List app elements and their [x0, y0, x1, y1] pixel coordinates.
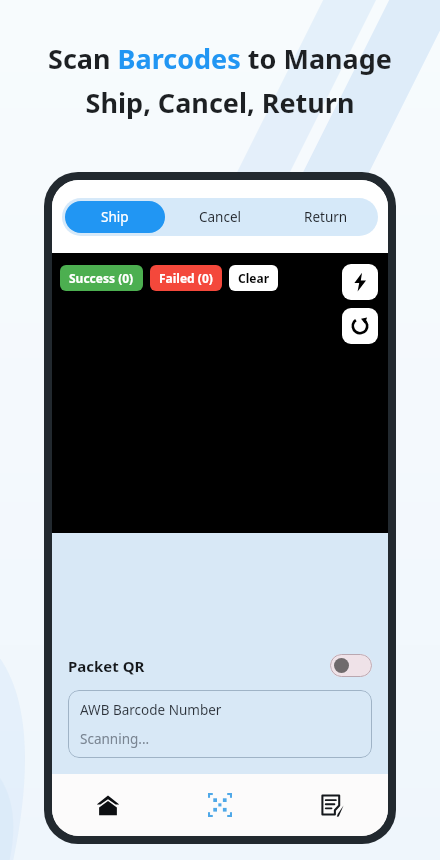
staticText: Failed (0): [159, 270, 213, 286]
button[interactable]: Return: [276, 201, 375, 233]
staticText: Scanning...: [80, 730, 150, 748]
button[interactable]: Failed (0): [150, 265, 222, 291]
staticText: Cancel: [199, 208, 242, 226]
staticText: Ship: [101, 208, 129, 226]
button[interactable]: Scan QR code: [164, 774, 276, 836]
button[interactable]: Refresh camera: [342, 308, 378, 344]
button[interactable]: Packet QR toggle: [330, 654, 372, 677]
button[interactable]: Ship: [65, 201, 165, 233]
button[interactable]: Notes: [276, 774, 388, 836]
staticText: Scan Barcodes to Manage Ship, Cancel, Re…: [18, 40, 422, 120]
staticText: AWB Barcode Number: [80, 701, 222, 719]
button[interactable]: Success (0): [60, 265, 143, 291]
button[interactable]: Toggle flash: [342, 264, 378, 300]
staticText: Return: [304, 208, 348, 226]
staticText: Clear: [238, 270, 269, 286]
button[interactable]: Clear: [229, 265, 278, 291]
button[interactable]: Home: [52, 774, 164, 836]
staticText: Packet QR: [68, 656, 145, 676]
staticText: Success (0): [69, 270, 134, 286]
button[interactable]: Cancel: [171, 201, 270, 233]
